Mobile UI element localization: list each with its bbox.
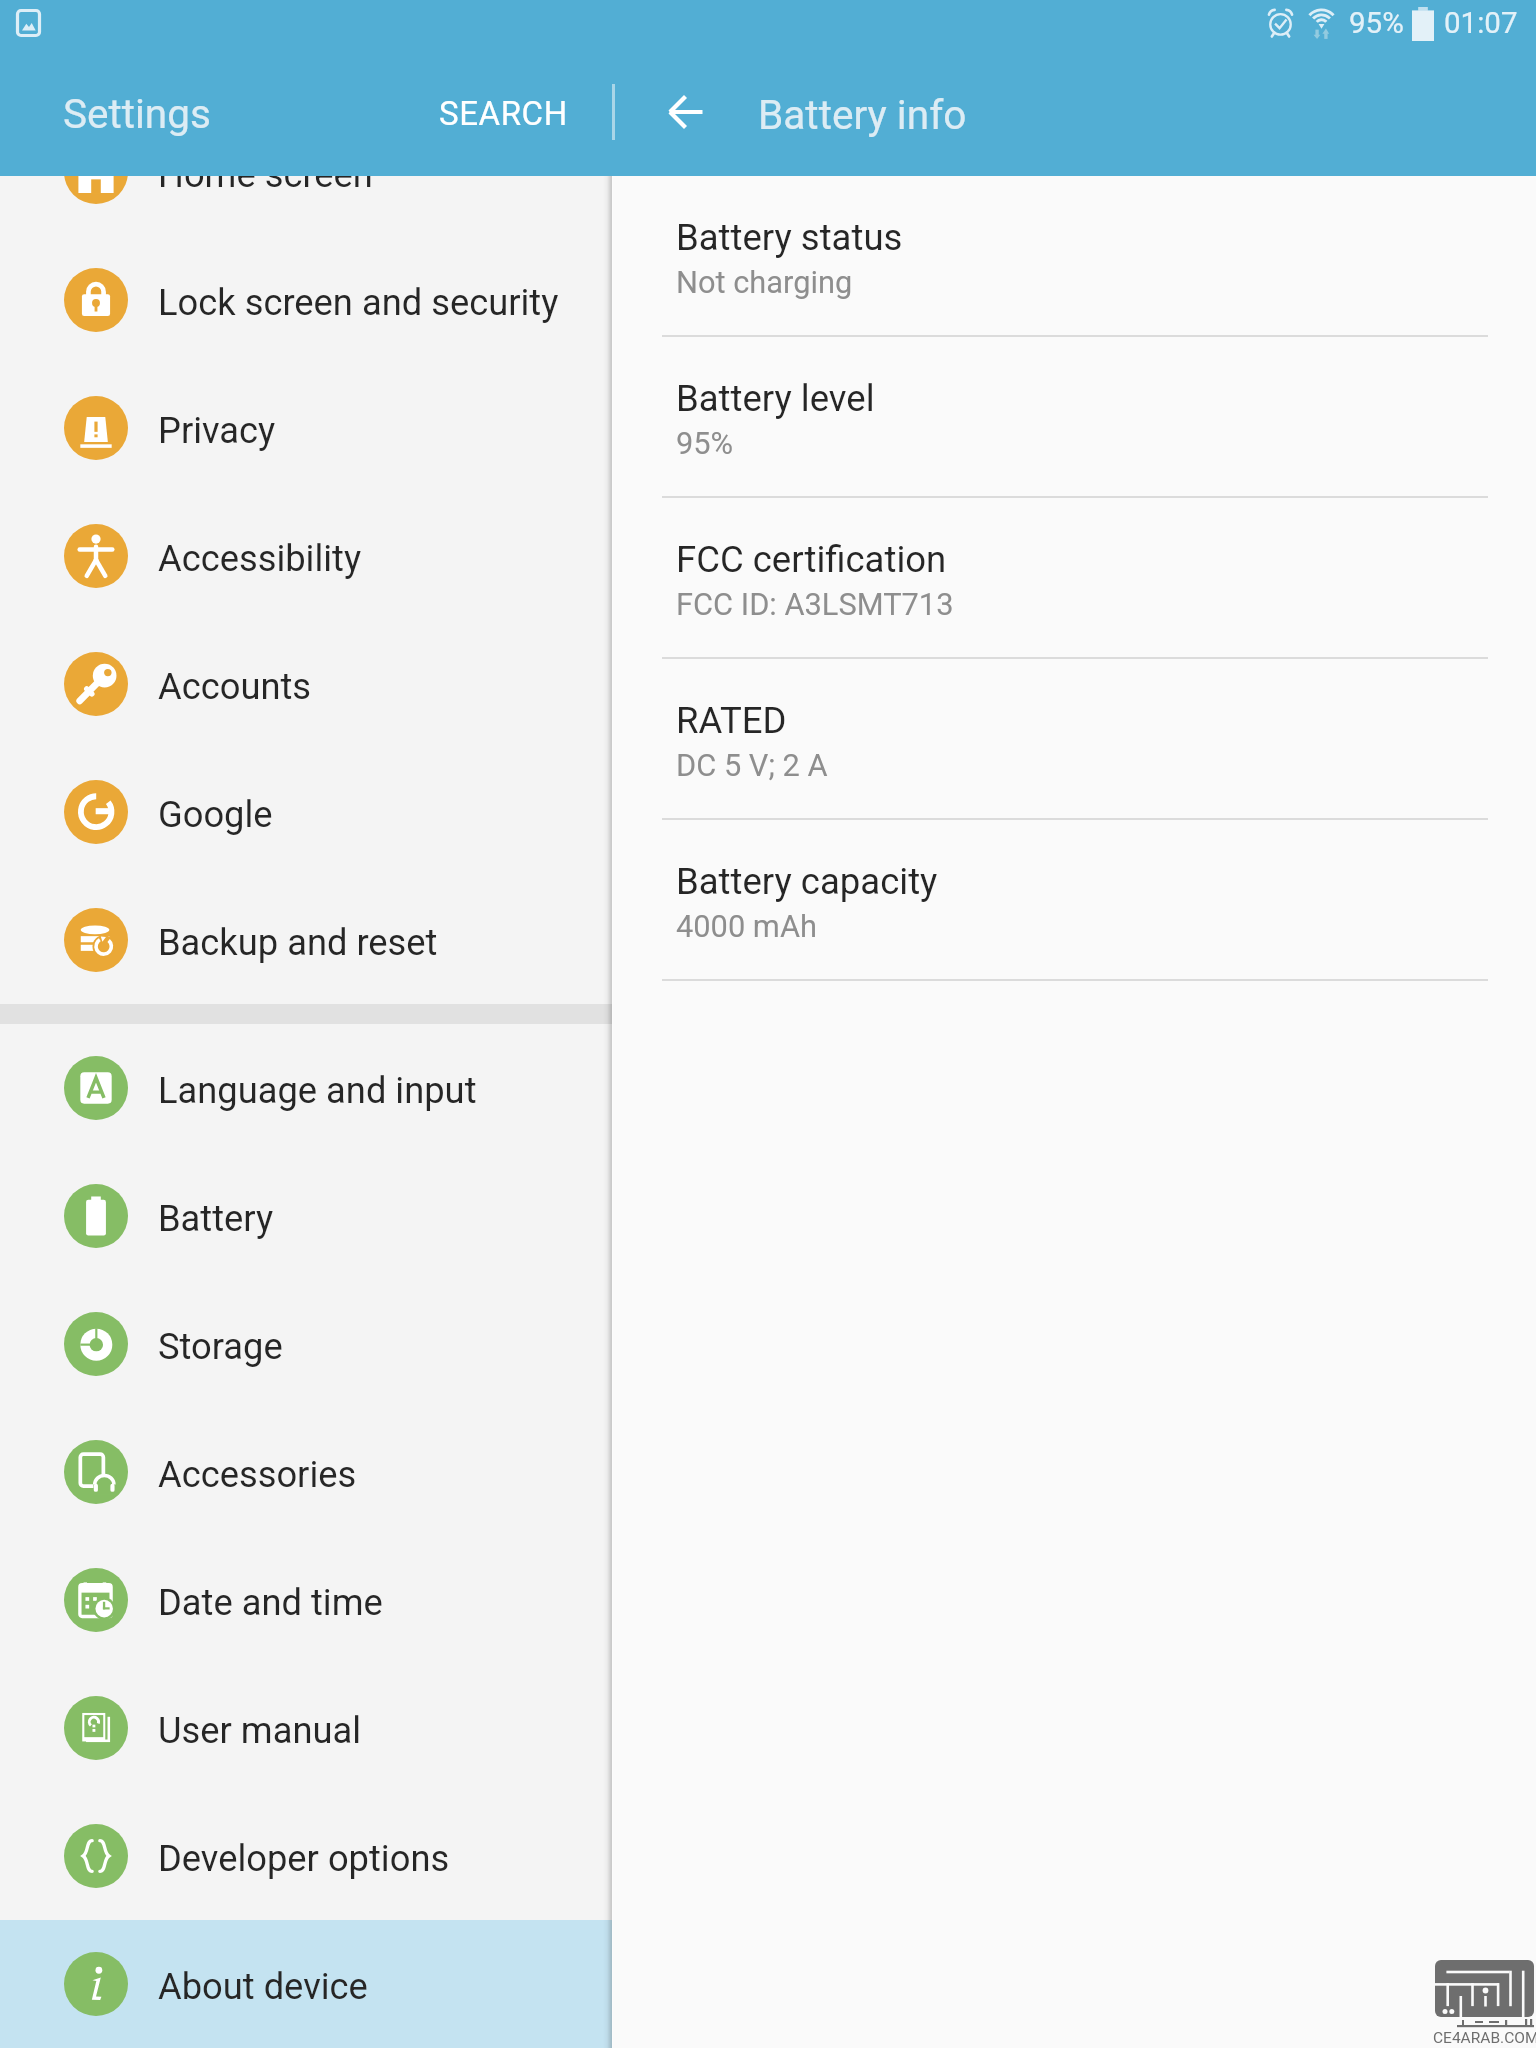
button[interactable]: SEARCH [419, 80, 588, 147]
staticText: Developer options [158, 1837, 450, 1880]
button[interactable]: FCC certification [613, 498, 1536, 659]
staticText: Battery status [676, 216, 903, 259]
staticText: Lock screen and security [158, 281, 559, 324]
button[interactable]: Accessories [0, 1408, 613, 1536]
staticText: Battery level [676, 377, 875, 420]
staticText: Language and input [158, 1069, 477, 1112]
staticText: 95% [1349, 6, 1404, 41]
staticText: FCC certification [676, 538, 947, 581]
staticText: Accounts [158, 665, 312, 708]
staticText: 01:07 [1444, 6, 1518, 41]
staticText: Date and time [158, 1581, 383, 1624]
button[interactable]: Accessibility [0, 492, 613, 620]
button[interactable]: Screenshot captured [9, 4, 47, 42]
staticText: About device [158, 1965, 368, 2008]
button[interactable]: About device [0, 1920, 613, 2048]
staticText: 4000 mAh [676, 908, 817, 944]
staticText: FCC ID: A3LSMT713 [676, 586, 954, 622]
button[interactable]: Developer options [0, 1792, 613, 1920]
staticText: Home screen [158, 176, 373, 196]
staticText: Battery info [758, 91, 967, 139]
button[interactable]: Battery capacity [613, 820, 1536, 981]
button[interactable]: Date and time [0, 1536, 613, 1664]
button[interactable]: Accounts [0, 620, 613, 748]
staticText: CE4ARAB.COM [1433, 2029, 1536, 2047]
button[interactable]: Back [650, 80, 722, 152]
button[interactable]: Battery status [613, 176, 1536, 337]
button[interactable]: Privacy [0, 364, 613, 492]
staticText: Accessories [158, 1453, 357, 1496]
button[interactable]: Lock screen and security [0, 236, 613, 364]
button[interactable]: RATED [613, 659, 1536, 820]
staticText: SEARCH [439, 94, 568, 133]
button[interactable]: Backup and reset [0, 876, 613, 1004]
staticText: 95% [676, 425, 734, 461]
button[interactable]: User manual [0, 1664, 613, 1792]
button[interactable]: Home screen [0, 176, 613, 236]
staticText: Privacy [158, 409, 276, 452]
staticText: Battery capacity [676, 860, 938, 903]
staticText: DC 5 V; 2 A [676, 747, 828, 783]
staticText: Settings [63, 90, 211, 137]
staticText: Backup and reset [158, 921, 438, 964]
button[interactable]: Battery [0, 1152, 613, 1280]
staticText: Battery [158, 1197, 274, 1240]
staticText: User manual [158, 1709, 362, 1752]
button[interactable]: Storage [0, 1280, 613, 1408]
staticText: RATED [676, 699, 787, 742]
staticText: Accessibility [158, 537, 362, 580]
button[interactable]: Battery level [613, 337, 1536, 498]
staticText: Not charging [676, 264, 853, 300]
button[interactable]: Language and input [0, 1024, 613, 1152]
staticText: Storage [158, 1325, 283, 1368]
staticText: Google [158, 793, 273, 836]
button[interactable]: Google [0, 748, 613, 876]
